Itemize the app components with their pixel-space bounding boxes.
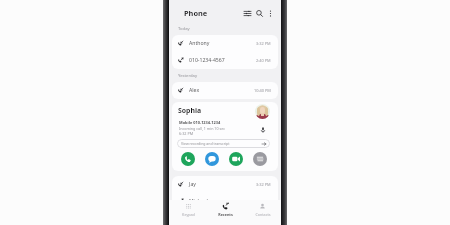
button[interactable]: Call — [181, 152, 195, 166]
button[interactable]: Michael — [172, 193, 278, 210]
button[interactable]: More — [253, 152, 267, 166]
button[interactable]: Alex — [172, 82, 278, 99]
staticText: Keypad — [182, 212, 195, 217]
staticText: Incoming call, 1 min 10 sec — [179, 126, 226, 131]
staticText: Mobile 010-1234-1234 — [179, 120, 221, 125]
button[interactable]: Search — [254, 8, 264, 18]
button[interactable]: Contacts — [244, 200, 281, 225]
staticText: 3:32 PM — [256, 41, 271, 46]
staticText: 010-1234-4567 — [189, 56, 225, 63]
staticText: Contacts — [255, 212, 271, 217]
staticText: Michael — [189, 197, 208, 204]
staticText: Today — [178, 26, 190, 32]
staticText: View recording and transcript — [181, 141, 230, 146]
staticText: Jay — [189, 180, 196, 187]
staticText: Sophia — [178, 106, 202, 115]
button[interactable]: Video call — [229, 152, 243, 166]
staticText: 6:32 PM — [179, 131, 194, 136]
button[interactable]: More options — [265, 8, 275, 18]
button[interactable]: Contact photo — [255, 104, 270, 119]
staticText: Alex — [189, 86, 200, 93]
button[interactable]: Anthony — [172, 35, 278, 52]
button[interactable]: Keypad — [169, 200, 207, 225]
staticText: Phone — [184, 8, 208, 18]
staticText: 2:40 PM — [256, 58, 271, 63]
button[interactable]: View recording and transcript — [177, 139, 270, 148]
staticText: 3:32 PM — [256, 182, 271, 187]
staticText: 10:40 PM — [254, 88, 271, 93]
button[interactable]: Recents — [207, 200, 244, 225]
button[interactable]: Sort — [242, 8, 252, 18]
staticText: Anthony — [189, 39, 210, 46]
button[interactable]: Jay — [172, 176, 278, 193]
staticText: Recents — [218, 212, 233, 217]
button[interactable]: Message — [205, 152, 219, 166]
button[interactable]: 010-1234-4567 — [172, 52, 278, 69]
staticText: Yesterday — [178, 73, 198, 79]
button[interactable]: Recording — [259, 126, 266, 133]
